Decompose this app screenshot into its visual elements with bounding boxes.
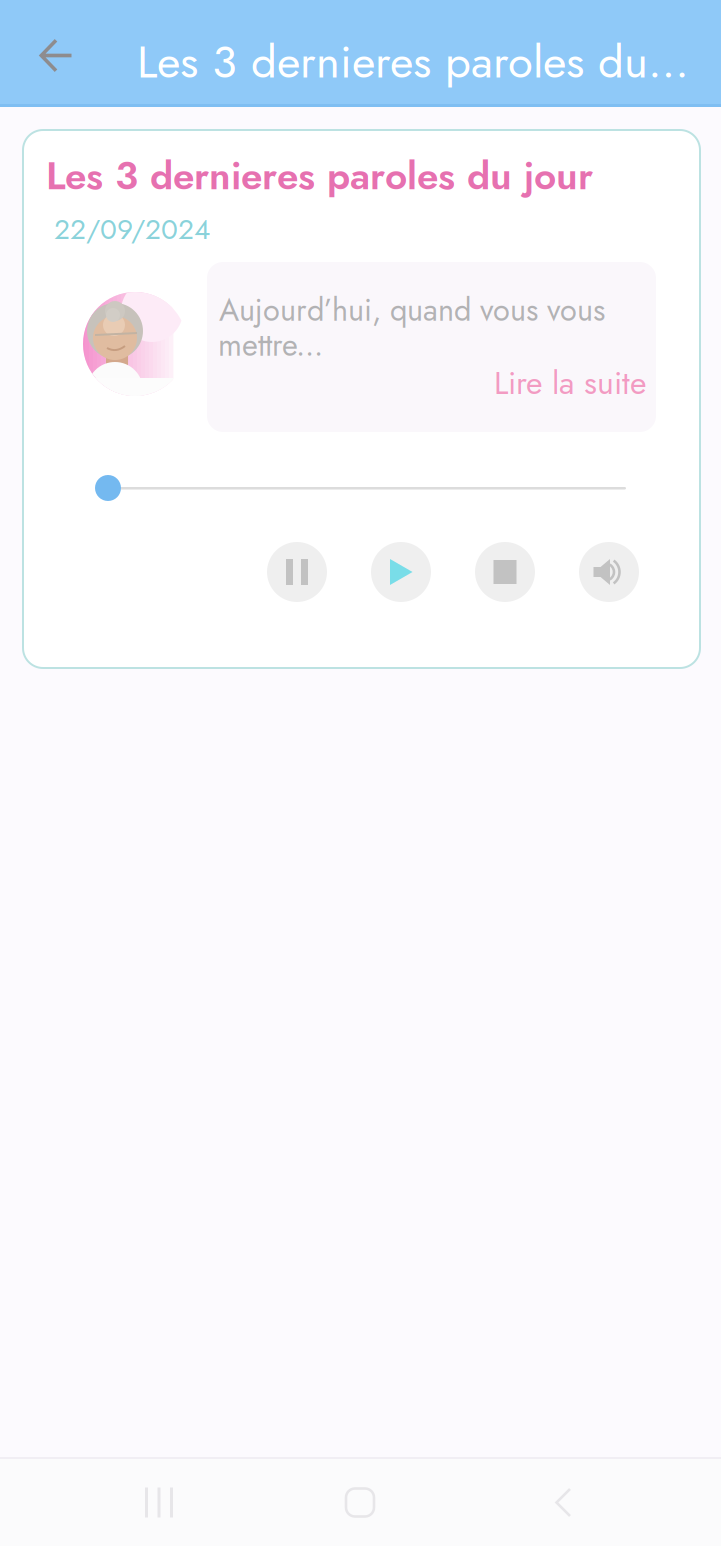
staticText: Aujourd’hui, quand vous vous — [219, 288, 605, 332]
button[interactable]: Stop — [475, 542, 535, 602]
staticText: Les 3 dernieres paroles du jour — [46, 148, 593, 204]
staticText: Les 3 dernieres paroles du… — [137, 29, 689, 94]
button[interactable]: Lire la suite — [486, 366, 646, 400]
button[interactable]: Back — [18, 2, 94, 109]
staticText: mettre... — [218, 323, 323, 367]
button[interactable]: Pause — [267, 542, 327, 602]
staticText: 22/09/2024 — [54, 209, 210, 249]
staticText: Lire la suite — [494, 360, 646, 406]
button[interactable]: Volume — [579, 542, 639, 602]
button[interactable]: Play — [371, 542, 431, 602]
